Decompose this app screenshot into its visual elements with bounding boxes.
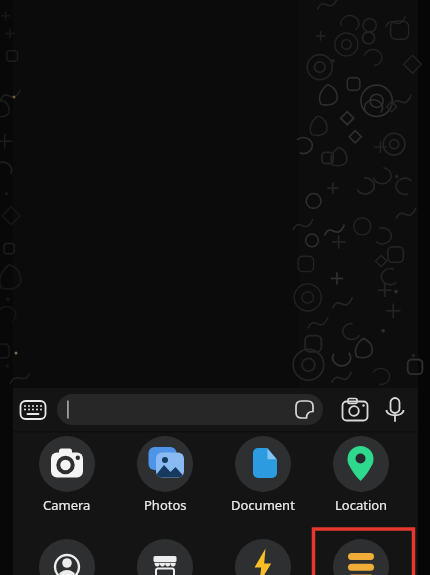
button[interactable] xyxy=(137,539,193,575)
button[interactable] xyxy=(39,539,95,575)
button[interactable] xyxy=(333,436,389,492)
button[interactable] xyxy=(57,394,323,425)
button[interactable] xyxy=(39,436,95,492)
button[interactable] xyxy=(16,393,50,427)
staticText: Location xyxy=(335,496,388,514)
staticText: Photos xyxy=(144,496,187,514)
button[interactable] xyxy=(235,436,291,492)
staticText: Camera xyxy=(43,496,91,514)
button[interactable] xyxy=(378,393,412,427)
button[interactable] xyxy=(137,436,193,492)
staticText: Document xyxy=(231,496,295,514)
button[interactable] xyxy=(338,393,372,427)
button[interactable] xyxy=(235,539,291,575)
button[interactable] xyxy=(333,539,389,575)
